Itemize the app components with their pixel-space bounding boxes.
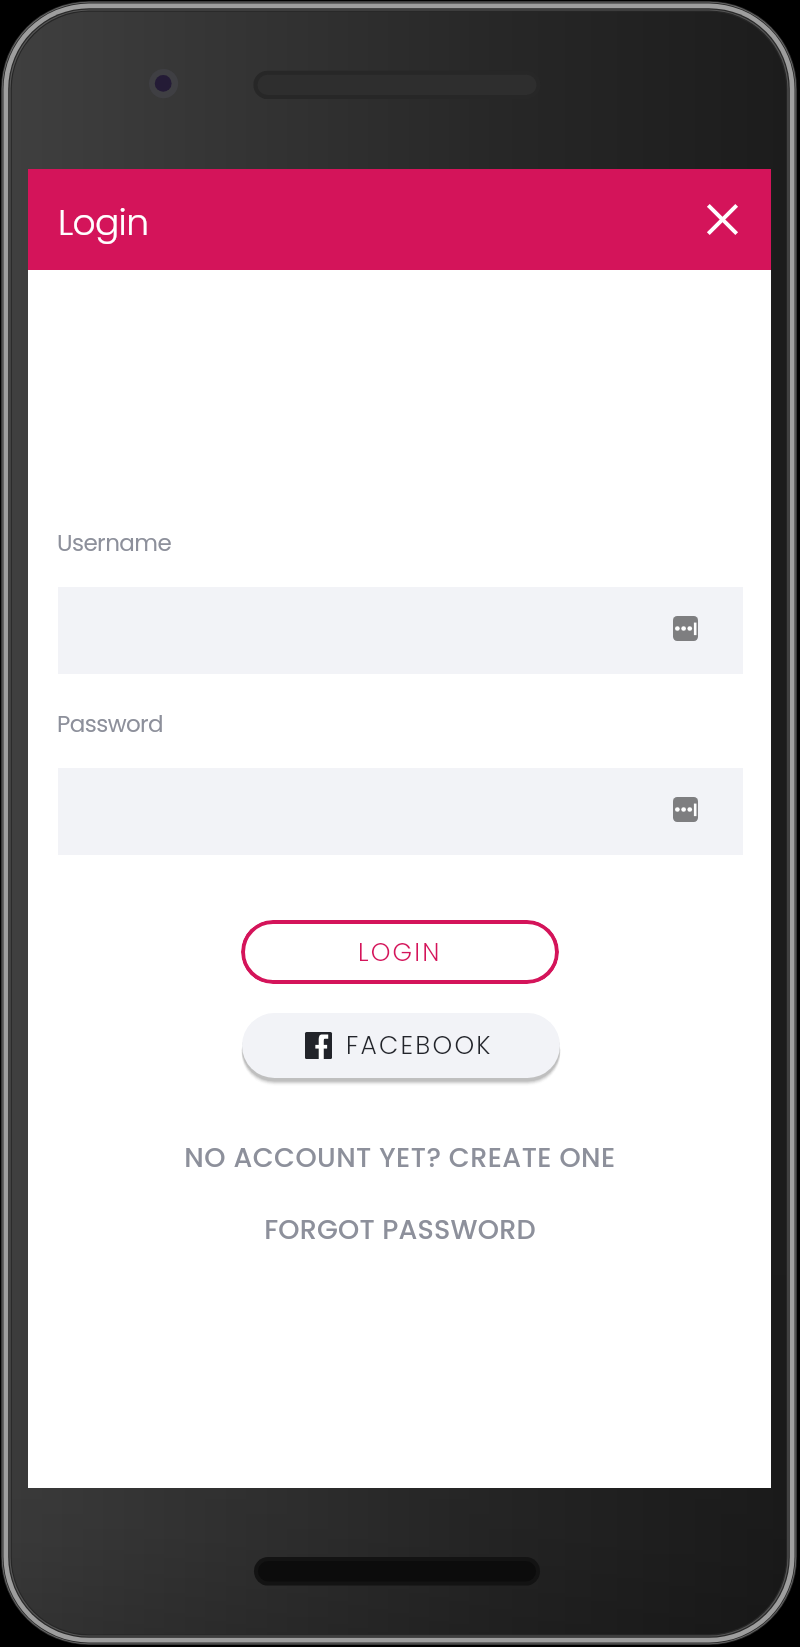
button[interactable]: FACEBOOK (242, 1013, 560, 1078)
button[interactable]: Show keyboard (58, 587, 743, 674)
staticText: FORGOT PASSWORD (264, 1211, 536, 1249)
staticText: LOGIN (358, 935, 442, 970)
staticText: Login (58, 197, 149, 247)
button[interactable]: LOGIN (241, 920, 559, 984)
button[interactable]: FORGOT PASSWORD (250, 1203, 550, 1257)
button[interactable]: Show keyboard (58, 768, 743, 855)
staticText: Username (57, 527, 172, 559)
button[interactable]: Close (696, 193, 748, 245)
staticText: Password (57, 708, 164, 740)
button[interactable]: NO ACCOUNT YET? CREATE ONE (170, 1131, 630, 1185)
other: Show keyboard (673, 797, 698, 822)
staticText: NO ACCOUNT YET? CREATE ONE (184, 1139, 616, 1177)
staticText: FACEBOOK (346, 1028, 493, 1063)
other: Show keyboard (673, 616, 698, 641)
